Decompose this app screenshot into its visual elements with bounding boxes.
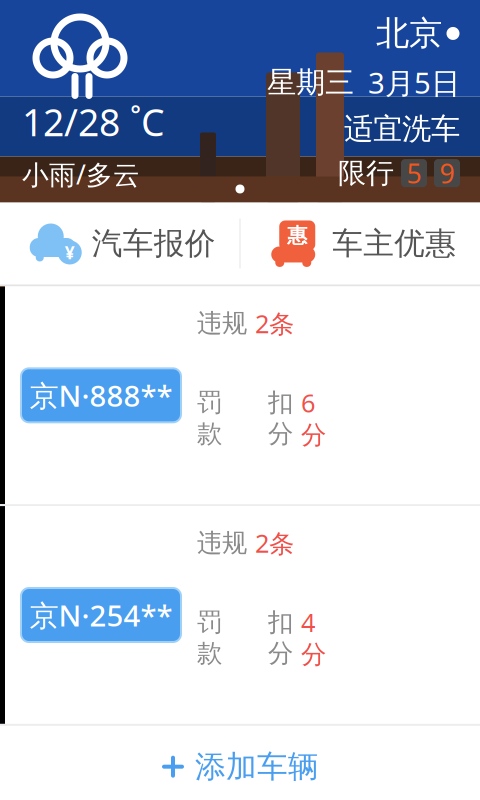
button[interactable]: 京N·888**	[0, 286, 480, 504]
staticText: 惠	[287, 223, 307, 248]
staticText: 6分	[301, 386, 326, 451]
staticText: 限行	[338, 156, 394, 190]
staticText: 罚款	[197, 607, 222, 669]
staticText: 京N·254**	[29, 595, 172, 634]
staticText: 小雨/多云	[22, 157, 140, 192]
button[interactable]: 添加车辆	[0, 726, 480, 800]
staticText: 违规	[197, 527, 247, 558]
staticText: 罚款	[197, 387, 222, 449]
staticText: 扣分	[268, 607, 293, 669]
staticText: ¥	[65, 241, 75, 264]
staticText: 北京	[376, 13, 442, 54]
staticText: 车主优惠	[332, 225, 456, 262]
staticText: 4分	[301, 605, 326, 670]
staticText: 9	[439, 155, 454, 191]
staticText: 2条	[255, 526, 294, 560]
staticText: 2条	[255, 306, 294, 340]
staticText: 扣分	[268, 387, 293, 449]
button[interactable]: 惠	[240, 204, 480, 282]
staticText: 汽车报价	[92, 225, 216, 262]
button[interactable]: 京N·254**	[0, 506, 480, 724]
staticText: 12/28 ˚C	[22, 97, 165, 147]
staticText: 京N·888**	[29, 376, 172, 415]
staticText: 星期三	[267, 64, 354, 100]
staticText: 适宜洗车	[344, 111, 460, 147]
button[interactable]: ¥	[0, 205, 239, 281]
staticText: 3月5日	[368, 63, 460, 102]
staticText: 添加车辆	[195, 748, 319, 785]
staticText: 5	[406, 155, 421, 191]
staticText: 违规	[197, 308, 247, 339]
